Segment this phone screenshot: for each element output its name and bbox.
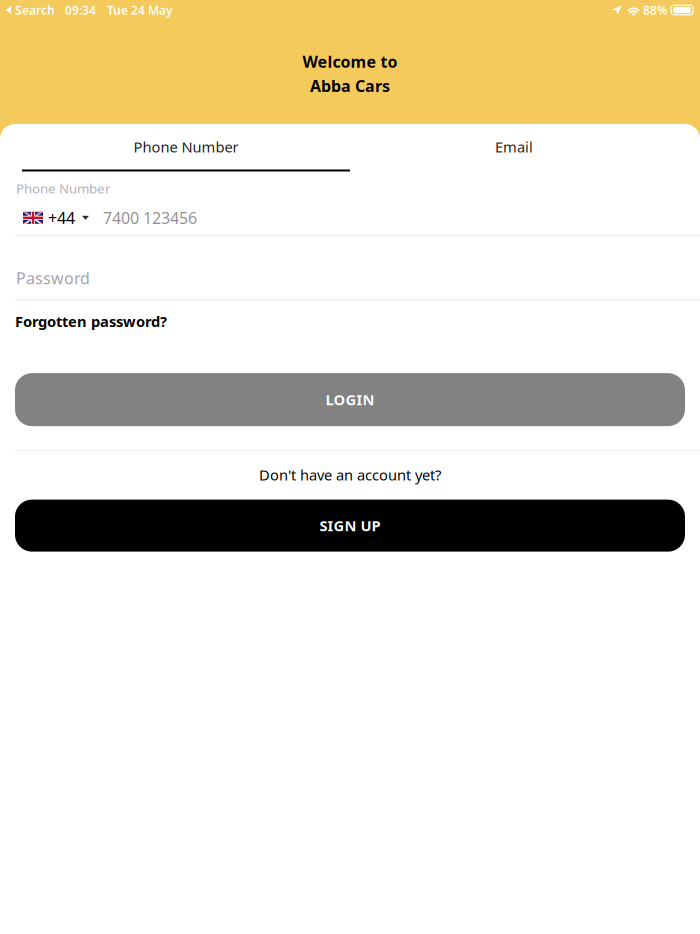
- staticText: LOGIN: [325, 390, 374, 409]
- staticText: Welcome to: [302, 51, 397, 72]
- staticText: Phone Number: [133, 137, 238, 156]
- button[interactable]: Password: [0, 236, 700, 299]
- staticText: +44: [48, 207, 75, 228]
- button[interactable]: Country code, United Kingdom, plus 44: [0, 199, 96, 234]
- button[interactable]: SIGN UP: [0, 485, 700, 552]
- staticText: 09:34: [65, 2, 96, 18]
- button[interactable]: LOGIN: [0, 340, 700, 426]
- staticText: 88%: [643, 2, 668, 18]
- staticText: Abba Cars: [310, 75, 390, 96]
- staticText: SIGN UP: [319, 516, 380, 535]
- staticText: 7400 123456: [103, 207, 197, 228]
- staticText: Password: [16, 267, 90, 289]
- button[interactable]: Phone Number: [0, 124, 372, 171]
- staticText: Tue 24 May: [107, 2, 173, 18]
- staticText: Forgotten password?: [15, 312, 167, 331]
- button[interactable]: Forgotten password?: [0, 301, 700, 340]
- staticText: Email: [495, 137, 533, 156]
- staticText: Don't have an account yet?: [259, 465, 441, 485]
- button[interactable]: 7400 123456: [96, 199, 700, 234]
- staticText: Phone Number: [16, 179, 111, 197]
- button[interactable]: Email: [372, 124, 656, 171]
- staticText: Search: [15, 2, 55, 18]
